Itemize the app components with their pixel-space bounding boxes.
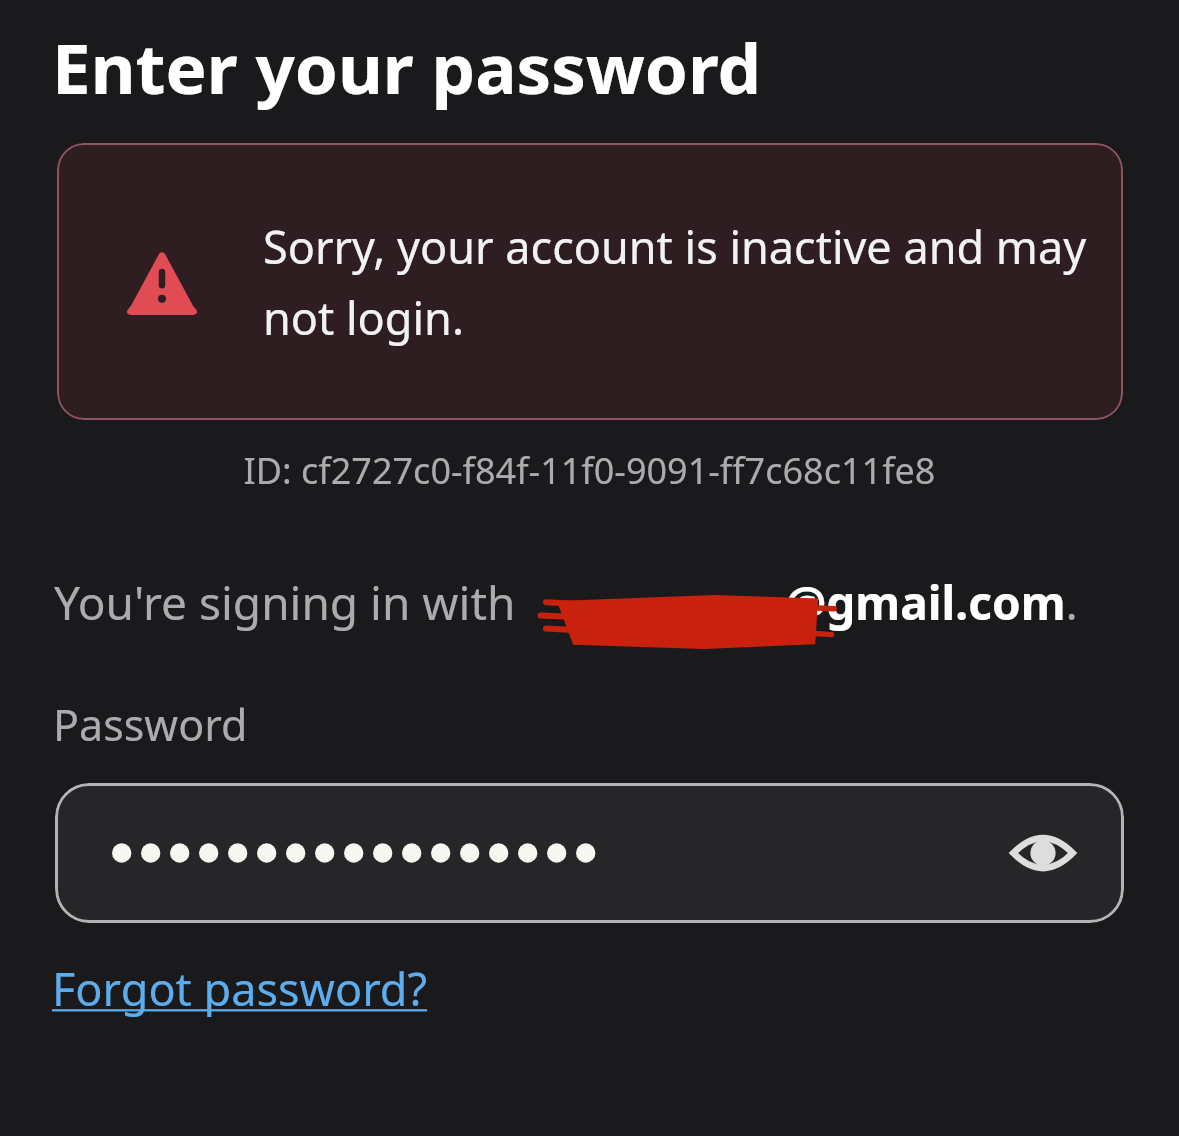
button[interactable]: Show password bbox=[1004, 821, 1082, 885]
staticText: ID: cf2727c0-f84f-11f0-9091-ff7c68c11fe8 bbox=[0, 446, 1179, 495]
staticText: Enter your password bbox=[52, 20, 762, 114]
staticText: You're signing in withXXXXXXXXXX@gmail.c… bbox=[54, 571, 1078, 634]
button[interactable]: Forgot password? bbox=[52, 958, 428, 1019]
staticText: Password bbox=[53, 695, 248, 754]
button[interactable]: Show password bbox=[55, 783, 1124, 923]
staticText: Sorry, your account is inactive and may … bbox=[263, 216, 1123, 348]
staticText: Forgot password? bbox=[52, 958, 428, 1019]
